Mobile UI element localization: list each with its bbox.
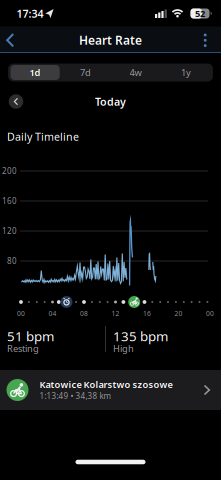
staticText: 7d [80,66,91,79]
staticText: 16 [143,309,151,318]
staticText: High [113,342,134,355]
staticText: Katowice Kolarstwo szosowe [39,378,172,391]
staticText: 08 [80,309,88,318]
staticText: 4w [130,66,142,79]
staticText: 51 bpm [7,327,54,345]
staticText: 17:34 [16,6,43,21]
button[interactable]: 7d [60,63,111,81]
staticText: 12 [111,309,119,318]
button[interactable]: 1d [10,63,61,81]
staticText: 00 [17,309,25,318]
button[interactable]: Back [0,27,22,52]
staticText: 80 [7,256,17,266]
staticText: 00 [206,309,214,318]
staticText: 135 bpm [113,327,168,345]
staticText: 52 [195,7,205,20]
button[interactable]: 4w [110,63,161,81]
button[interactable]: Previous day [7,93,24,110]
staticText: 200 [2,166,17,176]
staticText: Resting [7,342,39,355]
staticText: 04 [48,309,56,318]
button[interactable]: More [195,27,215,52]
staticText: 20 [174,309,182,318]
staticText: 120 [2,226,17,236]
staticText: Today [95,94,126,109]
staticText: 1:13:49 • 34,38 km [39,391,110,401]
staticText: 1d [30,66,41,79]
button[interactable]: Katowice Kolarstwo szosowe [0,370,221,410]
button[interactable]: 1y [160,63,211,81]
staticText: Daily Timeline [7,129,79,144]
staticText: Heart Rate [79,32,142,48]
staticText: 160 [2,196,17,206]
staticText: 1y [181,66,191,79]
